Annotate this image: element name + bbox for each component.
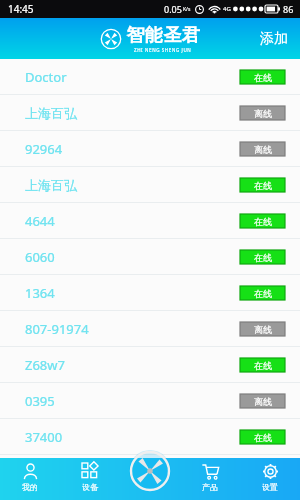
- staticText: 添加: [260, 30, 288, 48]
- button[interactable]: Home: [127, 450, 173, 492]
- staticText: 上海百弘: [25, 177, 77, 193]
- staticText: 4644: [25, 212, 55, 230]
- staticText: 离线: [254, 396, 272, 407]
- staticText: 1364: [25, 284, 55, 302]
- staticText: 在线: [254, 432, 272, 443]
- button[interactable]: 上海百弘: [0, 95, 300, 131]
- staticText: 离线: [254, 324, 272, 335]
- button[interactable]: 37400: [0, 419, 300, 455]
- staticText: 在线: [254, 216, 272, 227]
- staticText: 设备: [82, 482, 98, 492]
- staticText: Doctor: [25, 68, 67, 86]
- button[interactable]: 产品: [180, 458, 240, 500]
- staticText: 807-91974: [25, 320, 89, 338]
- button[interactable]: 807-91974: [0, 311, 300, 347]
- button[interactable]: 上海百弘: [0, 167, 300, 203]
- button[interactable]: Doctor: [0, 59, 300, 95]
- staticText: 上海百弘: [25, 105, 77, 121]
- button[interactable]: Z68w7: [0, 347, 300, 383]
- staticText: Z68w7: [25, 356, 65, 374]
- staticText: 0395: [25, 392, 55, 410]
- staticText: 37400: [25, 428, 63, 446]
- staticText: 离线: [254, 144, 272, 155]
- button[interactable]: 0395: [0, 383, 300, 419]
- staticText: 设置: [262, 482, 278, 492]
- button[interactable]: 我的: [0, 458, 60, 500]
- staticText: 14:45: [8, 2, 34, 16]
- staticText: 离线: [254, 108, 272, 119]
- staticText: 4G: [223, 5, 231, 13]
- staticText: 在线: [254, 288, 272, 299]
- button[interactable]: 92964: [0, 131, 300, 167]
- staticText: 86: [283, 3, 294, 15]
- staticText: 在线: [254, 360, 272, 371]
- staticText: 在线: [254, 180, 272, 191]
- staticText: 智能圣君: [126, 24, 200, 47]
- button[interactable]: 6060: [0, 239, 300, 275]
- staticText: 我的: [22, 482, 38, 492]
- staticText: 在线: [254, 72, 272, 83]
- staticText: 6060: [25, 248, 55, 266]
- button[interactable]: 设置: [240, 458, 300, 500]
- staticText: 0.05: [164, 3, 182, 15]
- staticText: ZHI NENG SHENG JUN: [134, 47, 192, 53]
- staticText: 产品: [202, 482, 218, 492]
- button[interactable]: 添加: [248, 22, 300, 56]
- button[interactable]: 设备: [60, 458, 120, 500]
- staticText: K/s: [183, 6, 191, 13]
- staticText: 在线: [254, 252, 272, 263]
- staticText: 92964: [25, 140, 63, 158]
- button[interactable]: 1364: [0, 275, 300, 311]
- button[interactable]: 4644: [0, 203, 300, 239]
